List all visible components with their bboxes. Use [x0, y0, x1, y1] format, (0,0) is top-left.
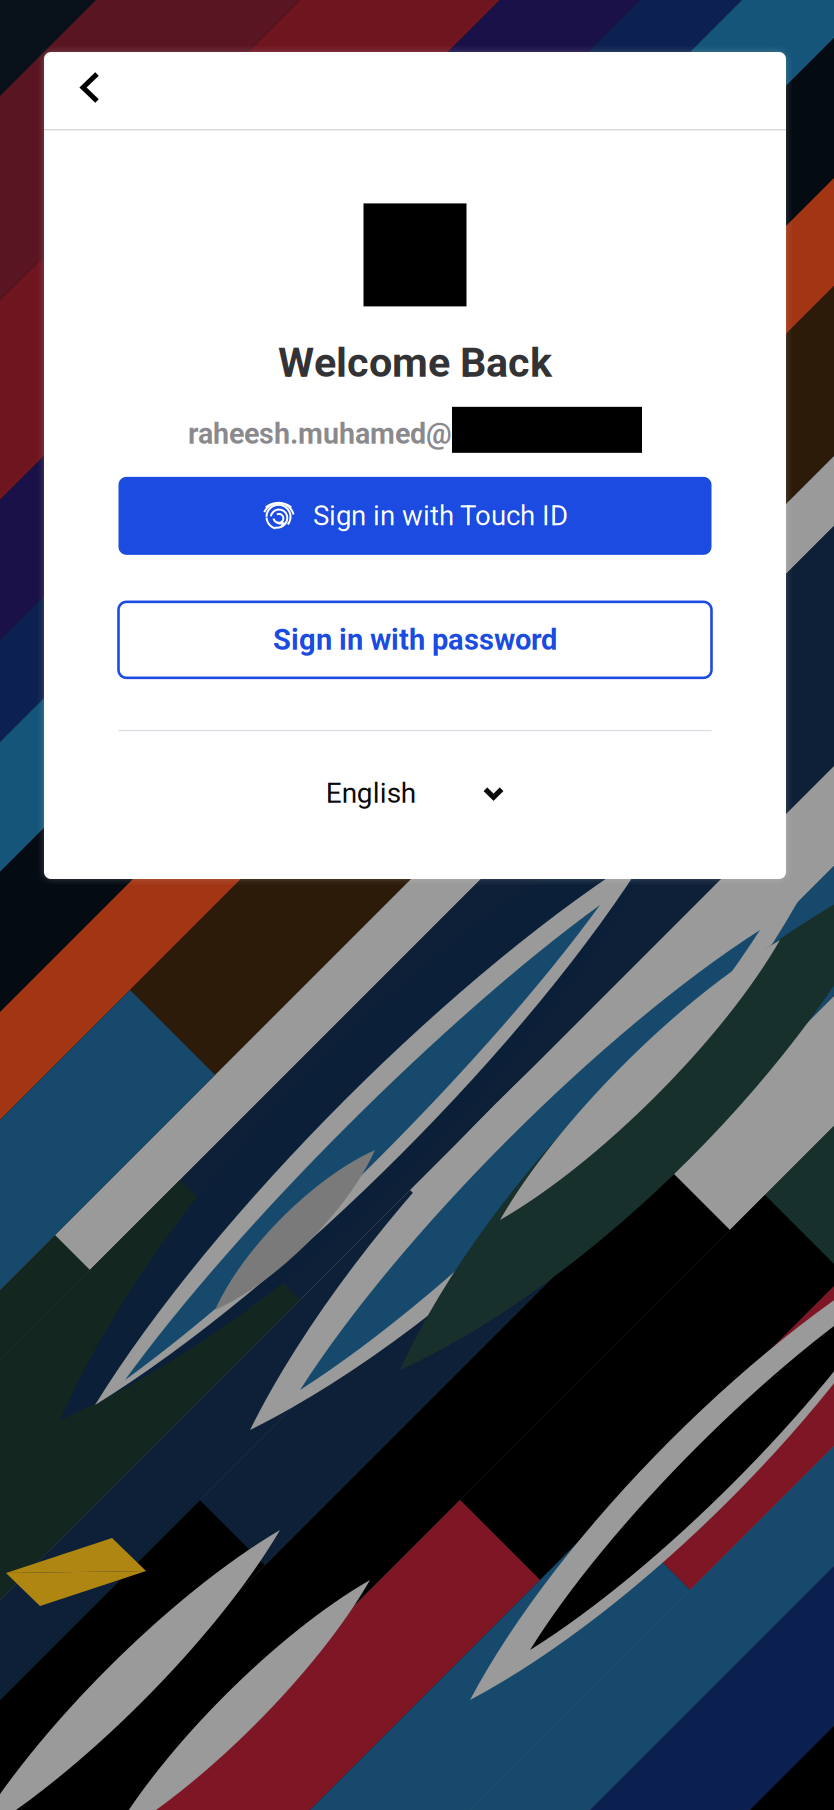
staticText: Welcome Back — [278, 338, 552, 387]
button[interactable]: English — [326, 773, 504, 813]
button[interactable]: Back — [62, 62, 118, 118]
staticText: English — [326, 777, 416, 810]
staticText: Sign in with Touch ID — [313, 500, 568, 532]
staticText: Sign in with password — [273, 623, 557, 657]
staticText: raheesh.muhamed@ — [188, 417, 452, 451]
button[interactable]: Sign in with Touch ID — [118, 477, 711, 555]
button[interactable]: Sign in with password — [118, 602, 711, 678]
